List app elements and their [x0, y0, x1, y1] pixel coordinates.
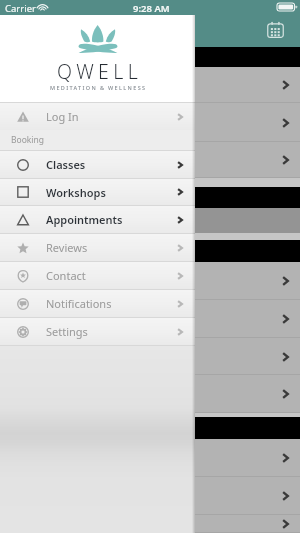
staticText: Log In [46, 109, 79, 124]
button[interactable] [0, 262, 300, 300]
button[interactable] [0, 142, 300, 178]
button[interactable] [0, 103, 300, 142]
staticText: Reviews [46, 240, 88, 255]
button[interactable]: Contact [0, 262, 195, 289]
button[interactable] [0, 67, 300, 103]
staticText: Booking [11, 134, 45, 146]
button[interactable]: Reviews [0, 234, 195, 261]
button[interactable] [0, 439, 300, 477]
staticText: Carrier [5, 2, 36, 15]
button[interactable]: Appointments [0, 206, 195, 233]
staticText: MEDITATION & WELLNESS [50, 84, 147, 91]
button[interactable] [0, 515, 300, 533]
button[interactable] [0, 338, 300, 375]
button[interactable] [0, 300, 300, 338]
staticText: Settings [46, 324, 88, 339]
staticText: 9:28 AM [133, 2, 170, 15]
button[interactable]: Settings [0, 318, 195, 345]
staticText: Appointments [46, 212, 123, 227]
staticText: Classes [46, 157, 86, 172]
staticText: Notifications [46, 296, 112, 311]
button[interactable]: Workshops [0, 179, 195, 205]
staticText: QWELL [57, 58, 143, 85]
button[interactable]: Log In [0, 103, 195, 130]
button[interactable]: Notifications [0, 290, 195, 317]
staticText: Contact [46, 268, 86, 283]
button[interactable] [0, 477, 300, 515]
button[interactable]: Calendar [263, 18, 287, 42]
staticText: Workshops [46, 185, 106, 200]
button[interactable] [0, 375, 300, 413]
button[interactable]: Classes [0, 151, 195, 178]
